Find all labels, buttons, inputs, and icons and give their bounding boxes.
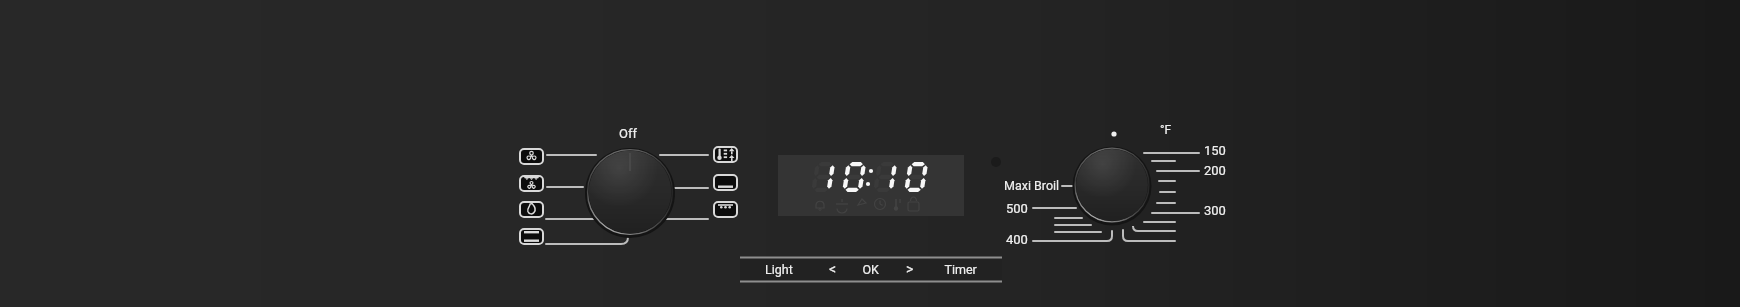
button[interactable]: Previous	[816, 259, 852, 281]
button[interactable]: Bake mode	[519, 228, 544, 245]
button[interactable]	[854, 259, 890, 281]
button[interactable]: Temperature selector knob	[1075, 148, 1150, 223]
button[interactable]	[932, 259, 990, 281]
button[interactable]: Bottom heat mode	[713, 174, 738, 191]
button[interactable]: Convection broil mode	[519, 175, 544, 192]
button[interactable]: Convection bake mode	[519, 148, 544, 165]
button[interactable]: Defrost mode	[713, 146, 738, 163]
button[interactable]: Top grill mode	[713, 201, 738, 218]
button[interactable]: Gas broil mode	[519, 201, 544, 218]
button[interactable]: Next	[892, 259, 928, 281]
button[interactable]: Function selector knob	[587, 149, 673, 235]
button[interactable]	[742, 259, 794, 281]
